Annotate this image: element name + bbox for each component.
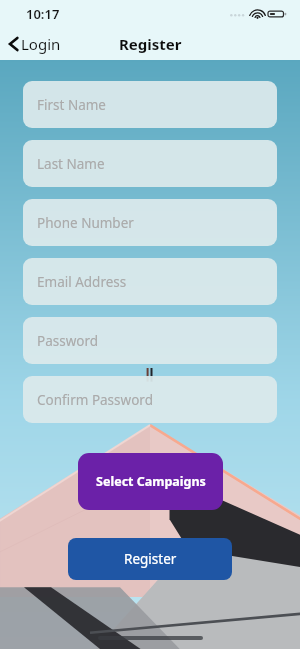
staticText: Phone Number [37, 214, 134, 232]
button[interactable]: Register [68, 538, 232, 580]
staticText: Email Address [37, 273, 127, 291]
staticText: Confirm Password [37, 391, 153, 409]
button[interactable]: First Name [23, 81, 277, 128]
staticText: Password [37, 332, 99, 350]
staticText: Login [21, 34, 61, 54]
button[interactable]: Login [0, 30, 69, 58]
staticText: Register [124, 550, 177, 568]
staticText: First Name [37, 96, 106, 114]
button[interactable]: Phone Number [23, 199, 277, 246]
staticText: 10:17 [26, 5, 60, 23]
staticText: Last Name [37, 155, 105, 173]
button[interactable]: Last Name [23, 140, 277, 187]
button[interactable]: Select Campaigns [78, 453, 223, 510]
button[interactable]: Confirm Password [23, 376, 277, 423]
button[interactable]: Password [23, 317, 277, 364]
staticText: Select Campaigns [96, 473, 206, 490]
button[interactable]: Email Address [23, 258, 277, 305]
staticText: Register [119, 34, 182, 54]
